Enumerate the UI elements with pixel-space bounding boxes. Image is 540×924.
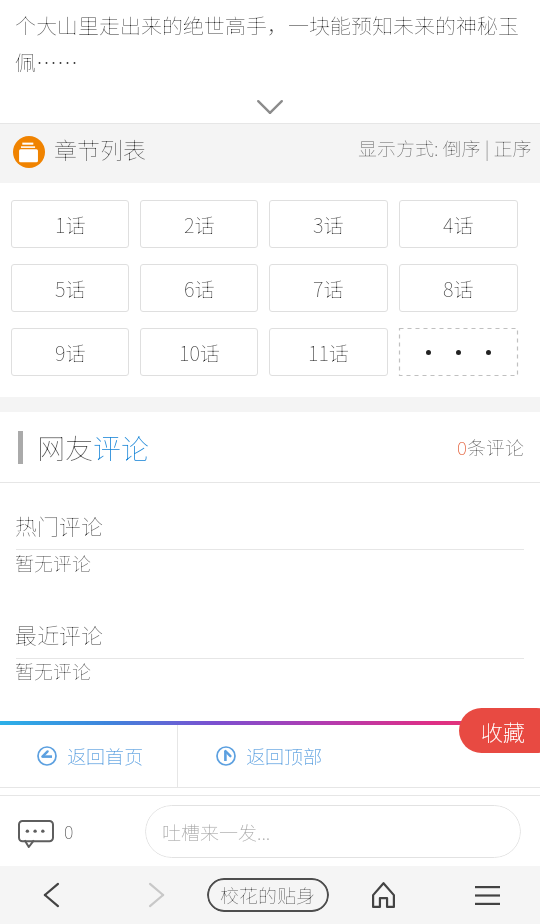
button[interactable]	[399, 328, 518, 376]
button[interactable]: 1话	[11, 200, 129, 248]
button[interactable]: 返回首页	[0, 725, 177, 787]
staticText: 6话	[184, 274, 215, 303]
button[interactable]: 吐槽来一发...	[145, 805, 521, 858]
button[interactable]: 主页	[331, 866, 435, 924]
button[interactable]: 校花的贴身	[207, 878, 329, 912]
staticText: 最近评论	[15, 618, 104, 650]
button[interactable]: 7话	[269, 264, 388, 312]
button[interactable]: 6话	[140, 264, 258, 312]
button[interactable]: 9话	[11, 328, 129, 376]
button[interactable]: 11话	[269, 328, 388, 376]
button[interactable]: 5话	[11, 264, 129, 312]
button[interactable]: 返回顶部	[178, 725, 540, 787]
staticText: 3话	[313, 210, 344, 239]
staticText: 0	[64, 818, 74, 844]
button[interactable]: 4话	[399, 200, 518, 248]
staticText: 网友评论	[37, 427, 150, 468]
button[interactable]: 收藏	[459, 708, 540, 753]
staticText: 2话	[184, 210, 215, 239]
staticText: 热门评论	[15, 509, 104, 541]
staticText: 收藏	[481, 715, 526, 747]
staticText: 吐槽来一发...	[162, 818, 271, 846]
button[interactable]: 后退	[0, 866, 101, 924]
staticText: 7话	[313, 274, 344, 303]
staticText: 9话	[55, 338, 86, 367]
button[interactable]: 3话	[269, 200, 388, 248]
button[interactable]: 10话	[140, 328, 258, 376]
staticText: 个大山里走出来的绝世高手，一块能预知未来的神秘玉佩……	[15, 10, 532, 77]
button[interactable]: 2话	[140, 200, 258, 248]
staticText: 章节列表	[54, 132, 146, 165]
staticText: 暂无评论	[15, 657, 92, 685]
button[interactable]: 8话	[399, 264, 518, 312]
staticText: 5话	[55, 274, 86, 303]
staticText: 4话	[443, 210, 474, 239]
staticText: 显示方式: 倒序 | 正序	[358, 134, 532, 162]
staticText: 校花的贴身	[220, 881, 316, 909]
staticText: 0条评论	[457, 433, 524, 461]
staticText: 暂无评论	[15, 549, 92, 577]
staticText: 10话	[179, 338, 220, 367]
staticText: 1话	[55, 210, 86, 239]
staticText: 11话	[308, 338, 349, 367]
button[interactable]: 展开简介	[0, 77, 540, 123]
staticText: 返回顶部	[246, 742, 323, 770]
button[interactable]: 菜单	[435, 866, 540, 924]
button[interactable]: 评论数	[18, 817, 74, 845]
button[interactable]: 前进	[101, 866, 205, 924]
staticText: 8话	[443, 274, 474, 303]
staticText: 返回首页	[67, 742, 144, 770]
